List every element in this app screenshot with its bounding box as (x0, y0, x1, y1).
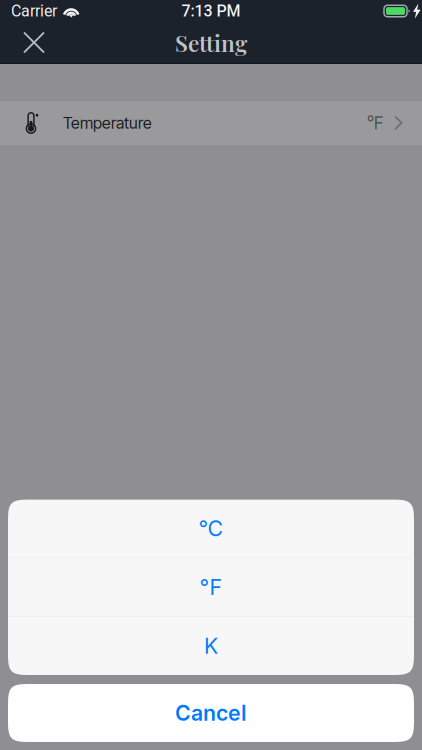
button[interactable]: Close (11, 21, 57, 63)
button[interactable]: Cancel (8, 684, 414, 742)
staticText: K (204, 633, 218, 659)
button[interactable]: °C (8, 500, 414, 558)
button[interactable]: Temperature (0, 101, 422, 145)
staticText: Setting (175, 27, 247, 58)
staticText: °F (199, 574, 222, 600)
staticText: Temperature (63, 113, 152, 133)
button[interactable]: K (8, 617, 414, 675)
staticText: Cancel (175, 700, 247, 726)
staticText: °F (367, 112, 383, 133)
staticText: °C (198, 516, 223, 541)
staticText: Carrier (11, 2, 57, 20)
staticText: 7:13 PM (181, 2, 240, 20)
button[interactable]: °F (8, 558, 414, 616)
